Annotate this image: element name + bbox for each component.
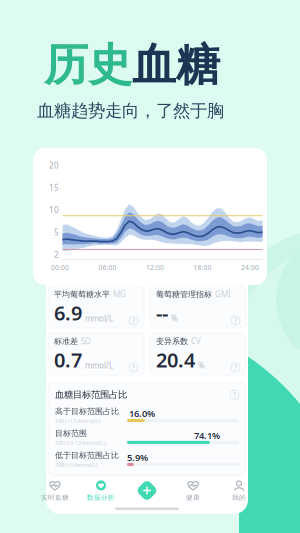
staticText: 24:00 [241,263,259,272]
staticText: TAR (>13.9mmol/L) [55,417,101,424]
staticText: 18:00 [193,263,211,272]
staticText: 目标范围 [55,428,87,438]
button[interactable]: 数据分析 [82,477,120,503]
button[interactable]: 健康 [174,477,212,503]
staticText: -- [156,299,168,326]
staticText: ? [233,390,236,399]
staticText: GMI [215,289,231,299]
staticText: 平均葡萄糖水平 [54,289,110,299]
staticText: 5 [54,227,59,238]
staticText: ? [234,363,237,372]
staticText: 20 [49,160,59,171]
staticText: mmol/L [85,313,113,324]
staticText: 数据分析 [87,493,115,502]
button[interactable]: 我的 [220,477,258,503]
staticText: 葡萄糖管理指标 [156,289,212,299]
staticText: 血糖 [132,38,220,92]
staticText: 0.7 [54,346,82,373]
staticText: 06:00 [98,263,116,272]
staticText: 血糖目标范围占比 [55,389,127,400]
button[interactable]: 实时血糖 [36,477,74,503]
button[interactable]: Add record [128,477,166,503]
staticText: SD [81,336,91,346]
staticText: 我的 [232,493,246,502]
staticText: 5.9% [127,451,148,464]
staticText: % [171,313,178,324]
staticText: 历史 [44,38,132,92]
staticText: 低于目标范围占比 [55,450,119,460]
staticText: 实时血糖 [41,493,69,502]
staticText: 6.9 [54,299,82,326]
staticText: 2 [54,249,59,260]
staticText: TIR (3.9-13.9mmol/L) [55,439,106,446]
staticText: 74.1% [194,429,220,442]
staticText: ? [132,363,135,372]
staticText: CV [191,336,201,346]
staticText: ? [234,316,237,325]
staticText: 健康 [186,493,200,502]
staticText: ? [132,316,135,325]
staticText: 10 [49,205,59,215]
staticText: 16.0% [129,407,155,420]
staticText: 变异系数 [156,336,188,346]
staticText: MG [113,289,126,299]
staticText: 标准差 [54,336,78,346]
staticText: 12:00 [146,263,164,272]
staticText: % [198,360,205,371]
staticText: 15 [49,182,59,193]
staticText: 20.4 [156,346,195,373]
staticText: 血糖趋势走向，了然于胸 [37,100,224,121]
staticText: 高于目标范围占比 [55,406,119,416]
staticText: 00:00 [51,263,69,272]
staticText: TBR (<3.9mmol/L) [55,461,98,468]
staticText: mmol/L [85,360,113,371]
